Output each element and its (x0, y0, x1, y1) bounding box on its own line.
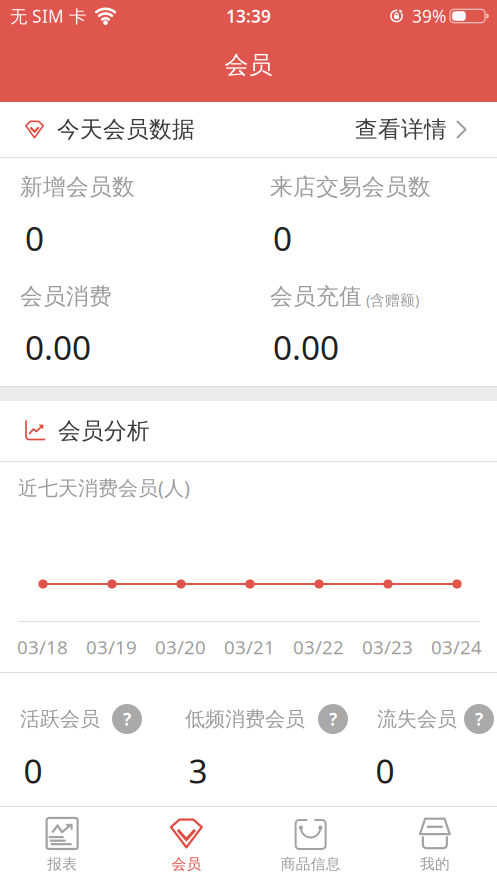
staticText: 39% (412, 4, 446, 27)
staticText: 会员 (224, 50, 272, 80)
staticText: 会员 (171, 855, 201, 873)
button[interactable]: 商品信息 (248, 807, 373, 883)
staticText: 03/22 (293, 635, 344, 659)
staticText: 03/23 (362, 635, 413, 659)
button[interactable]: 查看详情 (355, 116, 468, 143)
staticText: 会员充值 (270, 283, 362, 310)
button[interactable]: 报表 (0, 807, 124, 883)
staticText: 无 SIM 卡 (10, 4, 86, 27)
staticText: 新增会员数 (20, 173, 135, 201)
staticText: 我的 (420, 855, 450, 873)
staticText: 商品信息 (281, 855, 341, 873)
staticText: 低频消费会员 (185, 707, 305, 731)
staticText: 今天会员数据 (57, 116, 195, 143)
staticText: ? (475, 707, 483, 730)
staticText: 近七天消费会员(人) (18, 474, 190, 501)
staticText: (含赠额) (366, 290, 419, 309)
button[interactable]: 我的 (373, 807, 497, 883)
staticText: 流失会员 (377, 707, 457, 731)
staticText: 来店交易会员数 (270, 173, 431, 201)
staticText: 03/18 (17, 635, 68, 659)
staticText: 查看详情 (355, 116, 447, 143)
button[interactable]: 活跃会员说明 (112, 704, 142, 734)
staticText: 03/24 (431, 635, 482, 659)
button[interactable]: 低频消费会员说明 (318, 704, 348, 734)
staticText: 03/21 (224, 635, 275, 659)
staticText: 0 (273, 216, 292, 260)
button[interactable]: 会员 (124, 807, 248, 883)
button[interactable]: 流失会员说明 (464, 704, 494, 734)
staticText: 0.00 (25, 325, 91, 369)
staticText: 0 (25, 216, 44, 260)
staticText: ? (329, 707, 337, 730)
staticText: 0.00 (273, 325, 339, 369)
staticText: 03/20 (155, 635, 206, 659)
staticText: 0 (23, 748, 42, 793)
staticText: ? (123, 707, 131, 730)
staticText: 0 (375, 748, 394, 793)
staticText: 会员消费 (20, 283, 112, 310)
staticText: 13:39 (226, 4, 271, 27)
staticText: 会员分析 (58, 417, 150, 445)
staticText: 报表 (47, 855, 77, 873)
staticText: 03/19 (86, 635, 137, 659)
staticText: 3 (188, 748, 207, 793)
staticText: 活跃会员 (20, 707, 100, 731)
